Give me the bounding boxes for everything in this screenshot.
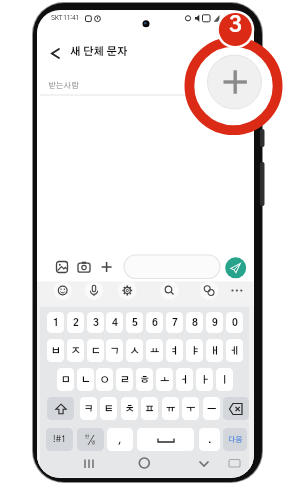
staticText: ㅠ (166, 404, 176, 414)
staticText: ㅓ (180, 375, 190, 385)
staticText: 새 단체 문자 (70, 47, 128, 58)
staticText: 3 (93, 318, 99, 328)
button[interactable] (225, 257, 246, 278)
button[interactable]: ㅕ (166, 339, 183, 362)
staticText: ㅗ (160, 375, 170, 385)
button[interactable]: 4 (106, 312, 123, 333)
staticText: 한 (85, 434, 90, 439)
button[interactable]: , (107, 428, 133, 451)
staticText: 3 (229, 14, 242, 36)
button[interactable]: 0 (226, 312, 243, 333)
button[interactable]: ㅊ (121, 397, 138, 420)
button[interactable]: ㅡ (203, 397, 220, 420)
button[interactable]: 7 (166, 312, 183, 333)
button[interactable]: ㅍ (141, 397, 158, 420)
staticText: ㅣ (220, 375, 230, 385)
staticText: ㅊ (125, 404, 135, 414)
button[interactable]: !#1 (46, 428, 73, 451)
staticText: ㅕ (170, 346, 180, 356)
button[interactable]: ㅇ (96, 368, 113, 391)
staticText: ㅌ (104, 404, 114, 414)
staticText: ㅡ (207, 404, 217, 414)
button[interactable]: 9 (206, 312, 223, 333)
staticText: ㄹ (120, 375, 130, 385)
button[interactable]: ㅔ (226, 339, 243, 362)
staticText: ㅏ (200, 375, 210, 385)
staticText: . (208, 435, 212, 445)
button[interactable] (209, 55, 259, 105)
button[interactable]: ㅅ (126, 339, 143, 362)
button[interactable]: ㅎ (136, 368, 153, 391)
staticText: ㅈ (71, 346, 81, 356)
staticText: 다음 (228, 436, 243, 444)
button[interactable]: ㅣ (216, 368, 233, 391)
staticText: 9 (212, 318, 218, 328)
staticText: ㅇ (100, 375, 110, 385)
staticText: !#1 (53, 436, 66, 444)
staticText: ㅅ (130, 346, 140, 356)
staticText: ㅋ (84, 404, 94, 414)
button[interactable]: 2 (67, 312, 84, 333)
button[interactable]: 1 (47, 312, 64, 333)
button[interactable]: ㄹ (116, 368, 133, 391)
staticText: 영 (91, 440, 96, 445)
staticText: ㅂ (51, 346, 61, 356)
staticText: SKT 11:41 (51, 15, 79, 22)
button[interactable]: 3 (87, 312, 104, 333)
button[interactable]: ㅜ (182, 397, 199, 420)
staticText: ㅍ (145, 404, 155, 414)
button[interactable]: ㅏ (196, 368, 213, 391)
staticText: ㅑ (190, 346, 200, 356)
staticText: 2 (73, 318, 79, 328)
staticText: 8 (192, 318, 198, 328)
button[interactable]: 8 (186, 312, 203, 333)
staticText: ㄴ (81, 375, 91, 385)
button[interactable]: ㅐ (206, 339, 223, 362)
button[interactable]: . (199, 428, 220, 451)
staticText: 0 (232, 318, 238, 328)
staticText: ㅁ (61, 375, 71, 385)
staticText: ㅐ (210, 346, 220, 356)
button[interactable]: ㅓ (176, 368, 193, 391)
button[interactable]: ㅌ (100, 397, 117, 420)
staticText: 4 (112, 318, 118, 328)
button[interactable]: ㅂ (47, 339, 64, 362)
button[interactable]: 5 (126, 312, 143, 333)
staticText: ㄱ (110, 346, 120, 356)
staticText: ㅔ (230, 346, 240, 356)
button[interactable]: ㄴ (77, 368, 94, 391)
staticText: ㅎ (140, 375, 150, 385)
button[interactable] (45, 43, 67, 65)
staticText: 6 (152, 318, 158, 328)
button[interactable]: 6 (146, 312, 163, 333)
staticText: 7 (172, 318, 178, 328)
button[interactable]: ㅈ (67, 339, 84, 362)
button[interactable]: ㅋ (80, 397, 97, 420)
button[interactable]: ㄷ (87, 339, 104, 362)
staticText: 받는사람 (48, 82, 79, 90)
button[interactable] (47, 397, 74, 420)
staticText: ㅜ (186, 404, 196, 414)
staticText: 1 (53, 318, 59, 328)
button[interactable] (223, 397, 249, 420)
button[interactable]: 다음 (223, 428, 247, 451)
button[interactable] (137, 428, 194, 451)
button[interactable]: 한 (77, 428, 104, 451)
button[interactable]: ㅁ (57, 368, 74, 391)
staticText: ㄷ (91, 346, 101, 356)
button[interactable]: ㄱ (106, 339, 123, 362)
button[interactable]: ㅠ (162, 397, 179, 420)
staticText: , (118, 435, 122, 445)
staticText: ㅛ (150, 346, 160, 356)
button[interactable]: ㅗ (156, 368, 173, 391)
staticText: 5 (132, 318, 138, 328)
button[interactable]: ㅑ (186, 339, 203, 362)
button[interactable]: ㅛ (146, 339, 163, 362)
